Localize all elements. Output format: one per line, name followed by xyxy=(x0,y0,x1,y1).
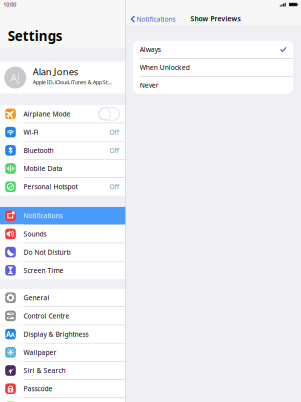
staticText: When Unlocked xyxy=(140,63,190,72)
button[interactable]: Notifications xyxy=(126,13,188,26)
staticText: Off xyxy=(109,182,119,191)
button[interactable]: Mobile Data xyxy=(0,160,125,177)
button[interactable]: Notifications xyxy=(0,207,125,224)
staticText: Wi-Fi xyxy=(24,128,39,137)
staticText: Siri & Search xyxy=(24,366,66,375)
button[interactable]: Airplane Mode xyxy=(0,105,125,123)
staticText: Wallpaper xyxy=(24,348,57,357)
staticText: Bluetooth xyxy=(24,146,54,155)
staticText: Control Centre xyxy=(24,311,70,320)
staticText: Settings xyxy=(8,27,63,45)
staticText: Notifications xyxy=(24,211,63,220)
button[interactable]: Always xyxy=(133,41,293,58)
staticText: Apple ID, iCloud, iTunes & App St… xyxy=(33,79,112,86)
button[interactable]: General xyxy=(0,289,125,306)
button[interactable]: Screen Time xyxy=(0,261,125,279)
staticText: AJ xyxy=(10,70,20,85)
staticText: Do Not Disturb xyxy=(24,248,71,257)
button[interactable]: Siri & Search xyxy=(0,362,125,379)
staticText: 10:00 xyxy=(3,1,16,8)
staticText: Notifications xyxy=(136,15,175,24)
button[interactable]: Do Not Disturb xyxy=(0,243,125,261)
staticText: Sounds xyxy=(24,229,47,238)
button[interactable]: Wallpaper xyxy=(0,343,125,361)
staticText: General xyxy=(24,293,50,302)
staticText: Personal Hotspot xyxy=(24,182,78,191)
button[interactable]: Bluetooth xyxy=(0,141,125,159)
staticText: Airplane Mode xyxy=(24,109,71,118)
staticText: Off xyxy=(109,128,119,137)
button[interactable]: Sounds xyxy=(0,225,125,243)
staticText: Screen Time xyxy=(24,266,64,275)
staticText: Mobile Data xyxy=(24,164,63,173)
button[interactable]: Control Centre xyxy=(0,307,125,325)
staticText: Off xyxy=(109,146,119,155)
staticText: Display & Brightness xyxy=(24,330,89,339)
button[interactable]: AJ xyxy=(0,61,125,94)
button[interactable]: Wi-Fi xyxy=(0,123,125,141)
button[interactable]: Personal Hotspot xyxy=(0,178,125,195)
staticText: Always xyxy=(140,45,161,54)
button[interactable]: When Unlocked xyxy=(133,59,293,76)
button[interactable]: Battery xyxy=(0,398,125,402)
staticText: Alan Jones xyxy=(33,65,78,78)
button[interactable]: Never xyxy=(133,76,293,94)
button[interactable]: Passcode xyxy=(0,380,125,397)
staticText: Show Previews xyxy=(190,14,240,23)
button[interactable]: Display & Brightness xyxy=(0,325,125,343)
staticText: Passcode xyxy=(24,384,53,393)
staticText: Never xyxy=(140,81,159,90)
